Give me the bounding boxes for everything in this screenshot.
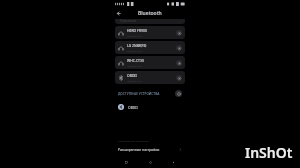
staticText: Подключено [127,64,142,67]
button[interactable]: Settings for HERO FR900 [176,30,182,36]
button[interactable]: Back [169,158,178,167]
button[interactable]: Home [146,158,155,167]
button[interactable]: Settings for WHC-CT30 [176,60,182,66]
button[interactable]: HERO FR900 [115,26,185,39]
staticText: Расширенные настройки [118,139,149,142]
staticText: Расширенные настройки [118,147,160,152]
button[interactable]: OBDII [112,102,188,112]
button[interactable]: Back [114,9,123,18]
button[interactable]: LG 2N88(FE) [115,41,185,54]
staticText: HERO FR900 [127,28,147,33]
staticText: ДОСТУПНЫЕ УСТРОЙСТВА [118,92,160,96]
staticText: WHC-CT30 [127,58,144,63]
staticText: Подключено [127,49,142,52]
button[interactable]: Settings for LG 2N88(FE) [176,45,182,51]
button[interactable]: Recents [122,158,131,167]
button[interactable]: Settings for OBDII [176,75,182,81]
button[interactable]: Расширенные настройки [112,145,188,154]
button[interactable]: WHC-CT30 [115,56,185,69]
staticText: InShOt [245,143,293,162]
staticText: OBDII [127,73,137,78]
button[interactable]: OBDII [115,71,185,84]
button[interactable]: Подключено [115,19,185,24]
staticText: Подключено [127,34,142,37]
staticText: OBDII [128,105,138,110]
staticText: Bluetooth [138,10,162,17]
staticText: Подключено [120,19,137,23]
button[interactable]: Refresh [175,90,182,97]
staticText: LG 2N88(FE) [127,43,147,48]
staticText: Подключено [127,79,142,82]
